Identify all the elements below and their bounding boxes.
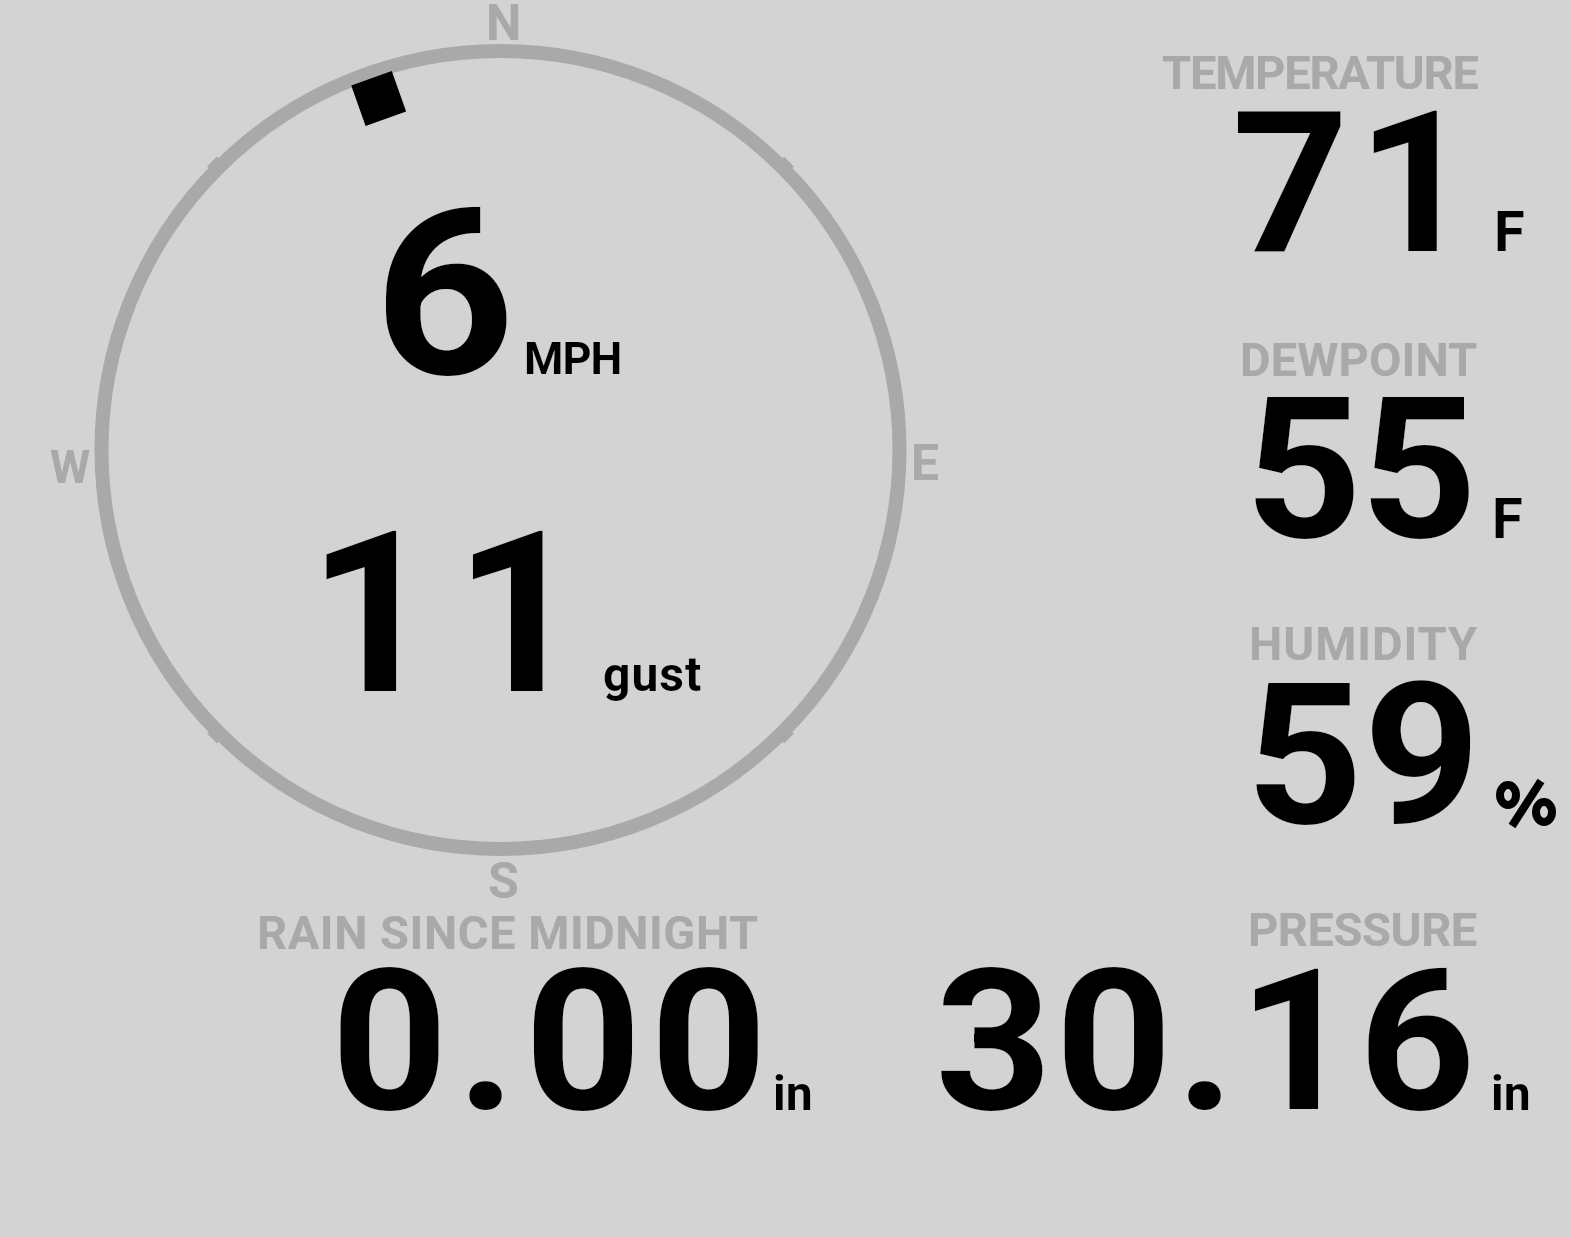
staticText: DEWPOINT xyxy=(1240,332,1478,387)
staticText: 11 xyxy=(308,482,601,746)
staticText: 71 xyxy=(1232,68,1482,299)
staticText: 59 xyxy=(1246,640,1481,871)
staticText: F xyxy=(1492,486,1523,552)
staticText: PRESSURE xyxy=(1248,902,1477,957)
staticText: in xyxy=(1491,1065,1531,1121)
button[interactable]: Humidity 59 percent xyxy=(1140,610,1571,840)
staticText: MPH xyxy=(524,332,622,385)
button[interactable]: Dew point 55 degrees Fahrenheit xyxy=(1140,325,1571,555)
staticText: 30.16 xyxy=(935,926,1479,1157)
staticText: N xyxy=(486,0,522,53)
staticText: F xyxy=(1494,199,1525,265)
button[interactable]: Wind direction and speed dial xyxy=(0,0,1010,915)
staticText: 6 xyxy=(374,159,516,431)
staticText: W xyxy=(50,440,91,494)
staticText: gust xyxy=(603,646,703,702)
staticText: S xyxy=(488,852,519,911)
staticText: HUMIDITY xyxy=(1249,616,1479,671)
button[interactable]: Temperature 71 degrees Fahrenheit xyxy=(1140,40,1571,270)
staticText: TEMPERATURE xyxy=(1162,45,1478,100)
staticText: 55 xyxy=(1245,354,1476,585)
staticText: 0.00 xyxy=(331,926,777,1157)
button[interactable]: Pressure 30.16 inches xyxy=(900,895,1571,1125)
staticText: in xyxy=(773,1065,813,1121)
button[interactable]: Rain since midnight 0.00 inches xyxy=(240,895,840,1125)
staticText: E xyxy=(911,434,940,493)
staticText: RAIN SINCE MIDNIGHT xyxy=(257,905,759,960)
